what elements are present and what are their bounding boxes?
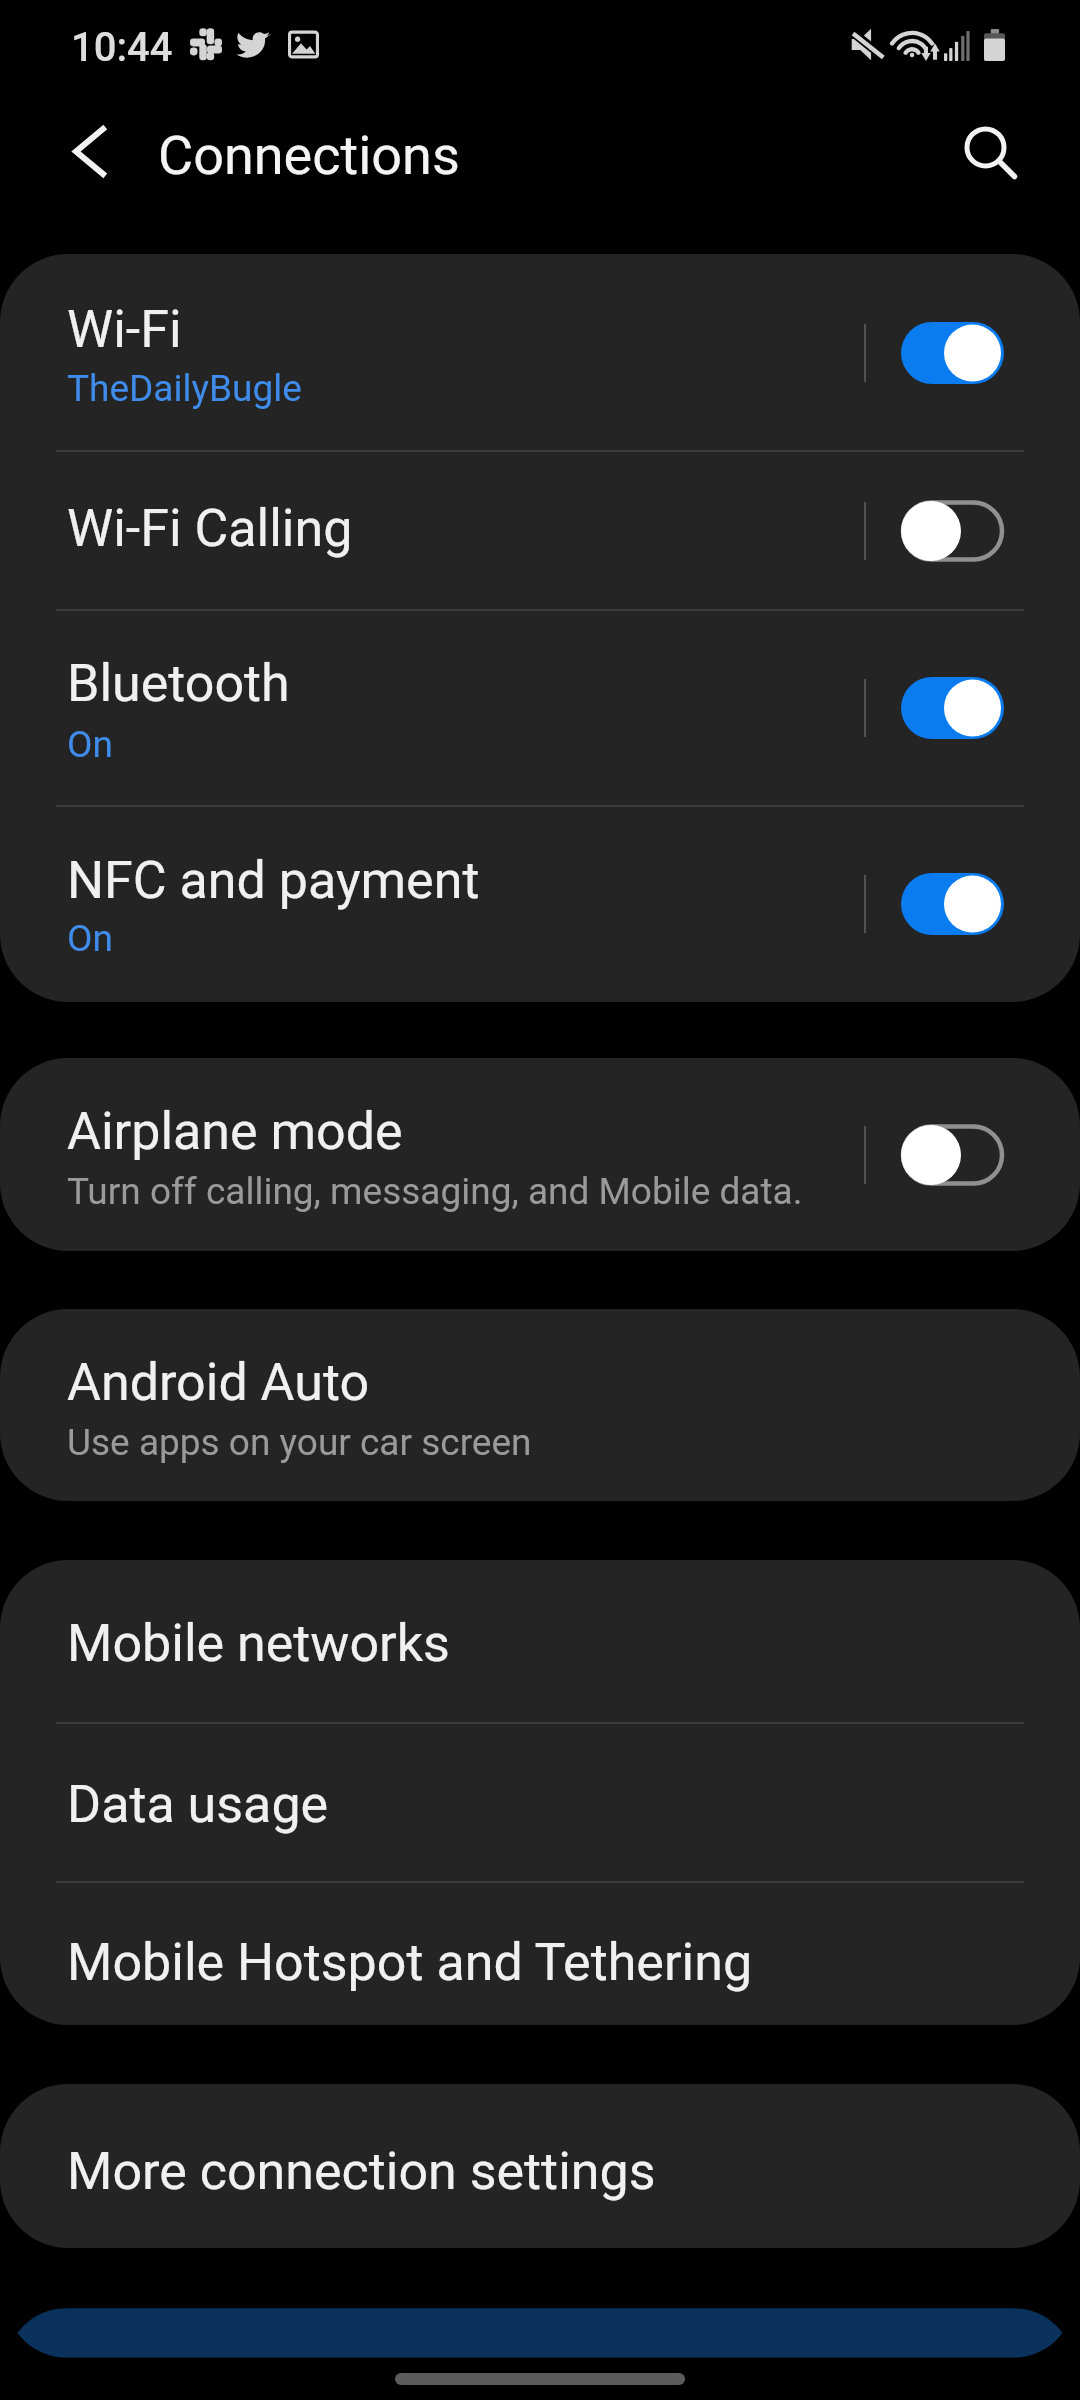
- staticText: Data usage: [67, 1774, 329, 1835]
- staticText: Wi-Fi Calling: [67, 498, 353, 559]
- button[interactable]: Airplane mode: [0, 1058, 1080, 1251]
- button[interactable]: Wi-Fi: [0, 254, 1080, 451]
- staticText: TheDailyBugle: [67, 367, 302, 410]
- button[interactable]: Switch on: [901, 873, 1004, 935]
- staticText: More connection settings: [67, 2141, 656, 2202]
- button[interactable]: NFC and payment: [0, 806, 1080, 1002]
- staticText: NFC and payment: [67, 850, 480, 911]
- button[interactable]: More connection settings: [0, 2084, 1080, 2248]
- button[interactable]: Switch on: [901, 677, 1004, 739]
- button[interactable]: Data usage: [0, 1723, 1080, 1882]
- staticText: Mobile Hotspot and Tethering: [67, 1932, 753, 1993]
- staticText: Turn off calling, messaging, and Mobile …: [67, 1170, 803, 1213]
- staticText: On: [67, 917, 113, 960]
- button[interactable]: Mobile Hotspot and Tethering: [0, 1882, 1080, 2025]
- button[interactable]: Switch on: [901, 322, 1004, 384]
- staticText: Airplane mode: [67, 1101, 403, 1162]
- button[interactable]: Switch off: [901, 1124, 1004, 1186]
- button[interactable]: Search: [933, 100, 1037, 204]
- button[interactable]: Bluetooth: [0, 610, 1080, 806]
- button[interactable]: Android Auto: [0, 1309, 1080, 1501]
- staticText: Mobile networks: [67, 1613, 450, 1674]
- staticText: Android Auto: [67, 1352, 370, 1413]
- staticText: Use apps on your car screen: [67, 1421, 532, 1464]
- button[interactable]: Back: [38, 100, 142, 204]
- staticText: Connections: [158, 124, 460, 187]
- staticText: Wi-Fi: [67, 299, 182, 360]
- staticText: Bluetooth: [67, 653, 290, 714]
- staticText: On: [67, 723, 113, 766]
- button[interactable]: Switch off: [901, 500, 1004, 562]
- button[interactable]: Mobile networks: [0, 1560, 1080, 1723]
- staticText: 10:44: [71, 24, 173, 71]
- button[interactable]: Wi-Fi Calling: [0, 451, 1080, 610]
